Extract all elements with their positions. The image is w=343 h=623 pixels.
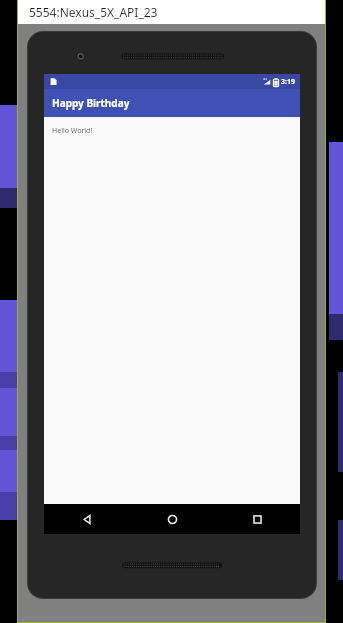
- staticText: 5554:Nexus_5X_API_23: [29, 4, 158, 20]
- button[interactable]: Back: [44, 504, 130, 534]
- staticText: 3:19: [281, 77, 295, 87]
- button[interactable]: Happy Birthday: [44, 89, 300, 117]
- button[interactable]: Home: [130, 504, 215, 534]
- staticText: Happy Birthday: [52, 96, 130, 110]
- staticText: Hello World!: [52, 126, 93, 136]
- button[interactable]: Recent apps: [215, 504, 300, 534]
